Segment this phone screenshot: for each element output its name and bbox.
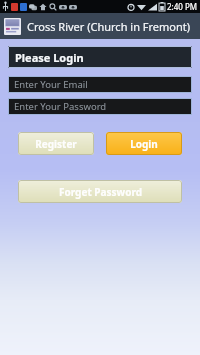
staticText: Please Login (15, 50, 84, 65)
button[interactable]: Register (18, 132, 94, 155)
staticText: Forget Password (59, 185, 142, 199)
button[interactable]: Enter Your Email (8, 76, 192, 93)
button[interactable]: Enter Your Password (8, 98, 192, 115)
staticText: Register (35, 137, 77, 151)
staticText: 2:40 PM (167, 1, 198, 12)
staticText: Enter Your Email (14, 78, 88, 91)
button[interactable]: Login (106, 132, 182, 155)
staticText: Enter Your Password (14, 100, 107, 113)
staticText: Login (130, 137, 158, 151)
button[interactable]: Forget Password (18, 180, 182, 203)
staticText: Cross River (Church in Fremont) (27, 19, 191, 34)
